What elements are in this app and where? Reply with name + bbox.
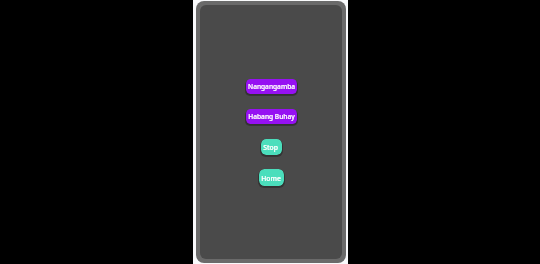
staticText: Nangangamba <box>248 82 295 91</box>
button[interactable]: Stop <box>261 139 282 155</box>
button[interactable]: Nangangamba <box>246 79 297 94</box>
button[interactable]: Home <box>259 169 284 186</box>
button[interactable]: Habang Buhay <box>246 109 297 124</box>
staticText: Habang Buhay <box>248 112 295 121</box>
staticText: Stop <box>263 143 278 152</box>
staticText: Home <box>261 174 281 183</box>
